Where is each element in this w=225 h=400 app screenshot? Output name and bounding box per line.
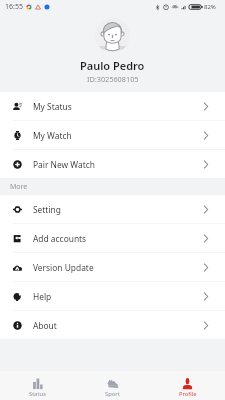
other: Profile photo <box>95 18 130 53</box>
button[interactable]: My Watch <box>0 121 225 149</box>
staticText: Sport <box>105 390 120 398</box>
button[interactable]: Setting <box>0 195 225 223</box>
button[interactable]: About <box>0 311 225 339</box>
button[interactable]: Pair New Watch <box>0 150 225 178</box>
staticText: Setting <box>33 204 61 215</box>
staticText: Status <box>29 390 46 398</box>
button[interactable]: Version Update <box>0 253 225 281</box>
staticText: Pair New Watch <box>33 159 95 170</box>
button[interactable]: My Status <box>0 92 225 120</box>
staticText: 16:55 <box>5 2 23 12</box>
button[interactable]: Profile photo <box>0 13 225 92</box>
staticText: Paulo Pedro <box>80 58 145 73</box>
staticText: Help <box>33 291 52 302</box>
staticText: Profile <box>179 390 197 398</box>
staticText: Version Update <box>33 262 94 273</box>
staticText: More <box>10 182 28 192</box>
button[interactable]: Sport <box>75 371 150 400</box>
button[interactable]: Add accounts <box>0 224 225 252</box>
staticText: Add accounts <box>33 233 87 244</box>
button[interactable]: Status <box>0 371 75 400</box>
staticText: ID:3025608105 <box>87 74 139 84</box>
button[interactable]: Profile <box>150 371 225 400</box>
staticText: My Watch <box>33 130 72 141</box>
staticText: About <box>33 320 57 331</box>
staticText: My Status <box>33 101 72 112</box>
staticText: 82% <box>204 3 216 11</box>
button[interactable]: Help <box>0 282 225 310</box>
